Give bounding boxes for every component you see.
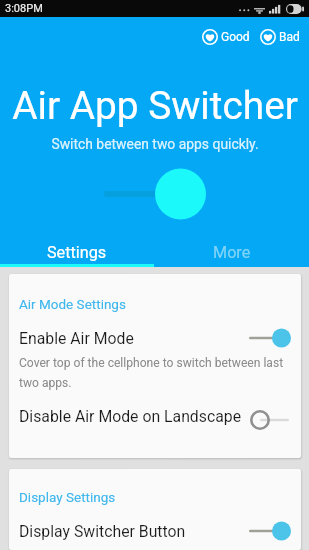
button[interactable]: Display Switcher Button [19, 518, 291, 544]
staticText: Disable Air Mode on Landscape [19, 407, 247, 426]
button[interactable]: Enable Air Switcher [100, 166, 210, 222]
staticText: Air App Switcher [12, 83, 298, 128]
button[interactable]: Enable Air Mode [19, 325, 291, 351]
staticText: 3:08PM [5, 2, 43, 15]
button[interactable]: Settings [0, 240, 154, 264]
button[interactable]: Toggle on [247, 518, 291, 544]
staticText: Enable Air Mode [19, 329, 247, 348]
button[interactable]: Disable Air Mode on Landscape [19, 403, 291, 429]
button[interactable]: Bad [260, 29, 300, 45]
staticText: Cover top of the cellphone to switch bet… [19, 356, 291, 390]
staticText: Switch between two apps quickly. [51, 136, 259, 152]
staticText: Bad [279, 30, 300, 44]
staticText: Display Settings [19, 489, 116, 505]
button[interactable]: More [154, 240, 309, 264]
button[interactable]: Toggle off [247, 403, 291, 429]
staticText: Display Switcher Button [19, 522, 247, 541]
staticText: More [213, 243, 251, 262]
button[interactable]: Good [202, 29, 250, 45]
staticText: Settings [47, 243, 107, 262]
staticText: Air Mode Settings [19, 296, 126, 312]
staticText: Good [221, 30, 250, 44]
button[interactable]: Toggle on [247, 325, 291, 351]
